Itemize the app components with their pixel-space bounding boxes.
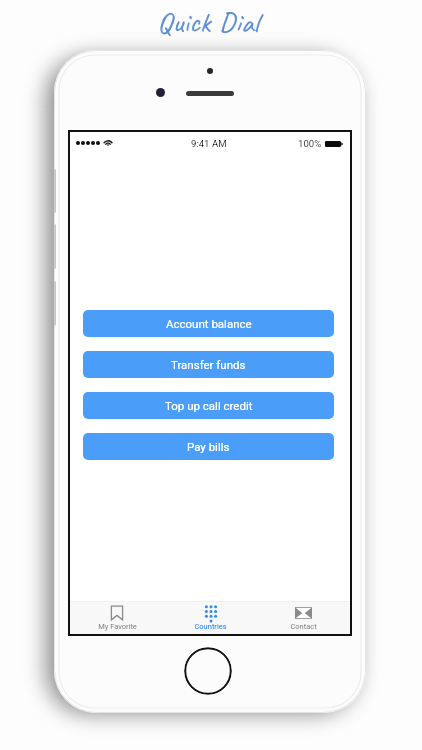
button[interactable]: Transfer funds: [83, 351, 334, 378]
button[interactable]: Countries: [164, 605, 257, 631]
staticText: Countries: [194, 622, 227, 631]
button[interactable]: Pay bills: [83, 433, 334, 460]
staticText: Account balance: [166, 317, 252, 330]
staticText: Pay bills: [187, 440, 230, 453]
button[interactable]: My Favorite: [70, 605, 164, 631]
button[interactable]: Contact: [257, 605, 350, 631]
staticText: Contact: [290, 622, 317, 631]
staticText: Transfer funds: [171, 358, 246, 371]
staticText: 100%: [298, 138, 322, 149]
button[interactable]: Home: [184, 647, 232, 695]
button[interactable]: Top up call credit: [83, 392, 334, 419]
staticText: My Favorite: [98, 622, 137, 631]
button[interactable]: Account balance: [83, 310, 334, 337]
staticText: Quick Dial: [0, 3, 419, 41]
staticText: 9:41 AM: [191, 138, 227, 149]
staticText: Top up call credit: [165, 399, 253, 412]
